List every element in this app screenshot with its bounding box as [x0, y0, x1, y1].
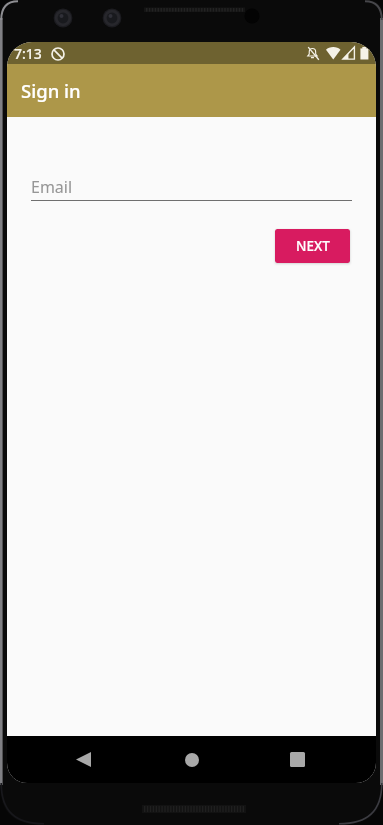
button[interactable]: Back [59, 736, 107, 783]
button[interactable]: Email [31, 176, 352, 201]
button[interactable]: Recent apps [273, 736, 321, 783]
button[interactable]: NEXT [275, 229, 350, 263]
staticText: Sign in [21, 78, 81, 103]
staticText: Email [31, 176, 73, 198]
button[interactable]: Home [168, 736, 216, 783]
staticText: NEXT [296, 237, 330, 255]
staticText: 7:13 [14, 44, 42, 63]
